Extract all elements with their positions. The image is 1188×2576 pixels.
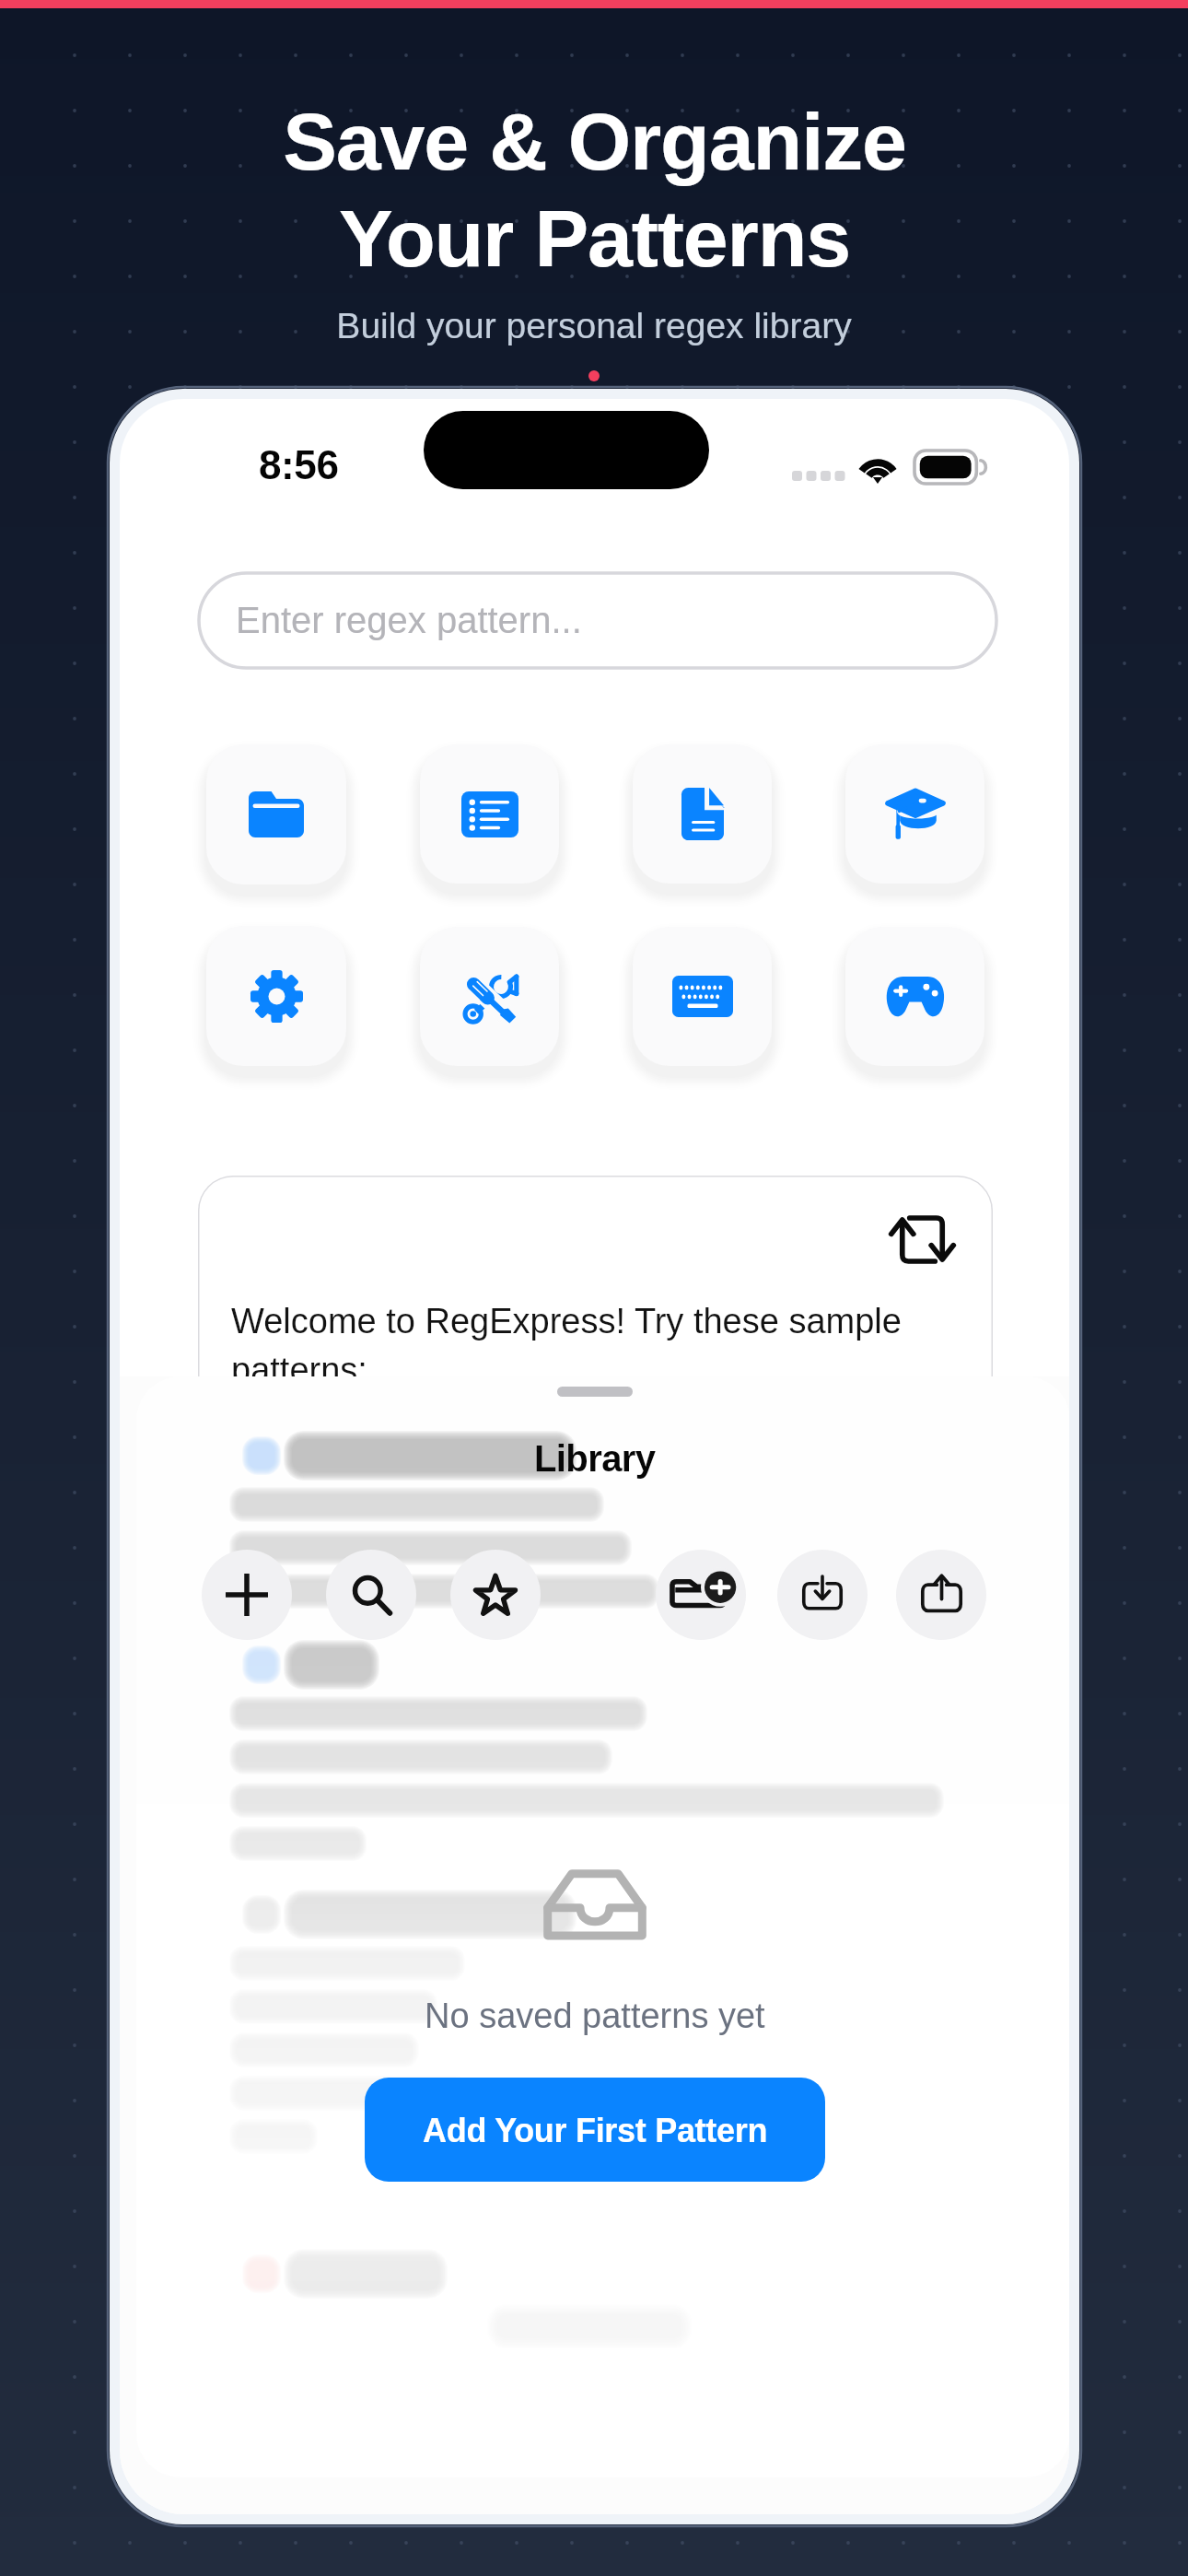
button[interactable]: New folder xyxy=(656,1550,746,1640)
staticText: No saved patterns yet xyxy=(425,1996,765,2035)
staticText: Library xyxy=(534,1438,656,1480)
button[interactable]: Lists xyxy=(420,744,559,884)
staticText: Enter regex pattern... xyxy=(236,600,582,641)
button[interactable]: Games xyxy=(845,927,984,1066)
button[interactable]: Tools xyxy=(420,927,559,1066)
button[interactable]: Import xyxy=(777,1550,868,1640)
staticText: Welcome to RegExpress! Try these sample … xyxy=(231,1302,931,1389)
button[interactable]: Keyboard xyxy=(633,927,772,1066)
staticText: Build your personal regex library xyxy=(336,306,852,346)
staticText: Save & Organize Your Patterns xyxy=(283,96,906,284)
button[interactable]: Share xyxy=(896,1550,986,1640)
button[interactable]: Welcome to RegExpress! Try these sample … xyxy=(198,1176,993,1692)
staticText: Add Your First Pattern xyxy=(423,2112,768,2149)
button[interactable]: Documents xyxy=(633,744,772,884)
button[interactable]: Enter regex pattern... xyxy=(199,573,996,668)
staticText: 8:56 xyxy=(259,442,339,487)
button[interactable]: Add Your First Pattern xyxy=(365,2078,825,2182)
button[interactable]: Favorites xyxy=(450,1550,541,1640)
button[interactable]: Learn xyxy=(845,744,984,884)
button[interactable]: Add pattern xyxy=(202,1550,292,1640)
button[interactable]: Folders xyxy=(206,744,346,884)
button[interactable]: Search xyxy=(326,1550,416,1640)
button[interactable]: Settings xyxy=(206,926,346,1066)
